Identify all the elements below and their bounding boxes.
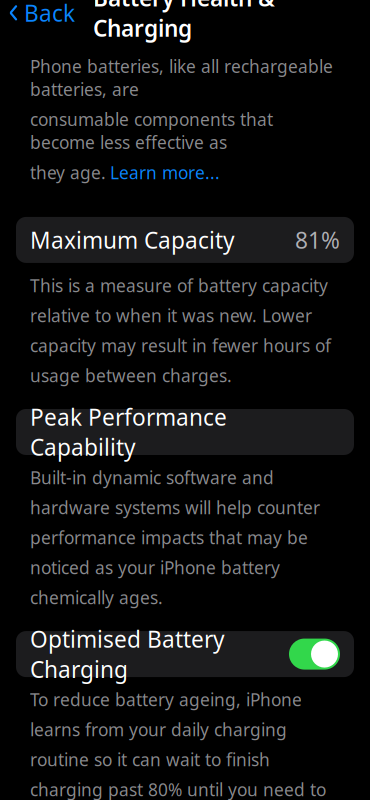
staticText: 81% [295, 225, 340, 255]
button[interactable]: Maximum Capacity [16, 217, 354, 263]
button[interactable]: Learn more... [110, 161, 220, 184]
staticText: To reduce battery ageing, iPhone learns … [30, 688, 326, 800]
staticText: Phone batteries, like all rechargeable b… [30, 55, 333, 101]
staticText: consumable components that become less e… [30, 108, 273, 154]
button[interactable]: Optimised Battery Charging [16, 631, 354, 677]
staticText: Battery Health & Charging [93, 0, 275, 43]
staticText: Built-in dynamic software and hardware s… [30, 466, 320, 609]
button[interactable]: Peak Performance Capability [16, 409, 354, 455]
button[interactable]: Back [0, 0, 79, 34]
staticText: Learn more... [110, 161, 220, 184]
staticText: Optimised Battery Charging [30, 624, 225, 684]
staticText: Maximum Capacity [30, 225, 235, 255]
staticText: Peak Performance Capability [30, 402, 227, 462]
staticText: Back [24, 0, 75, 28]
staticText: they age. [30, 161, 106, 184]
staticText: This is a measure of battery capacity re… [30, 274, 331, 387]
